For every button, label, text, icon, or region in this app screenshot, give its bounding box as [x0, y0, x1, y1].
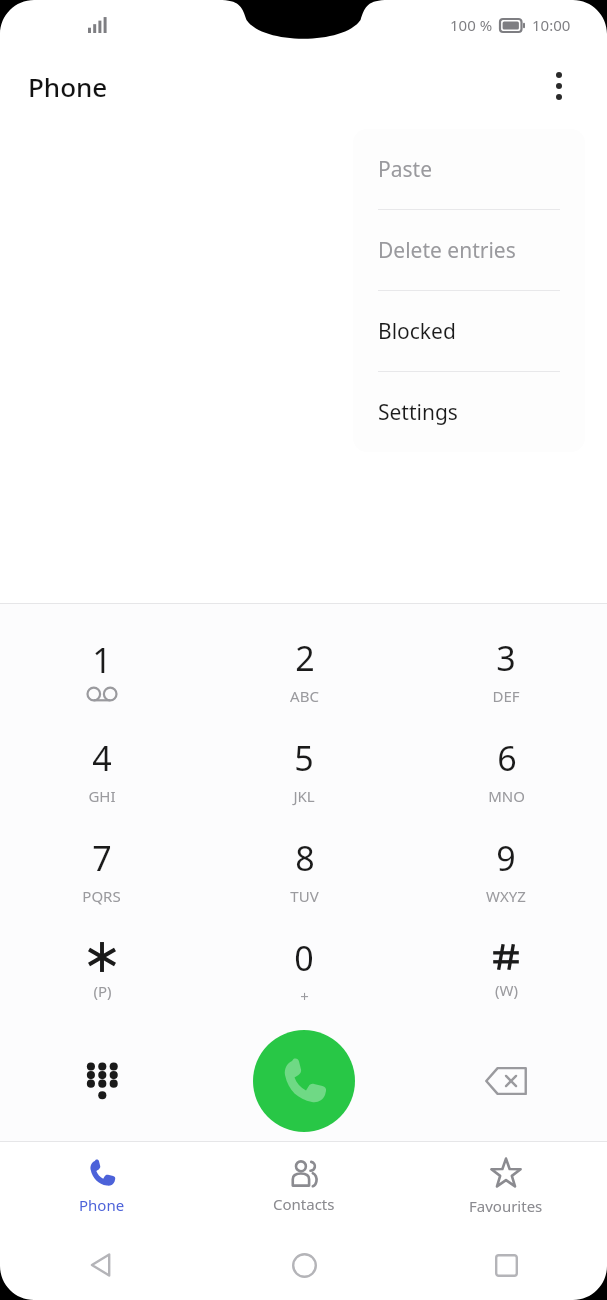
button[interactable]: 5	[203, 720, 405, 820]
staticText: 3	[496, 635, 516, 681]
button[interactable]: Home	[203, 1230, 405, 1300]
button[interactable]: More options	[537, 64, 581, 108]
button[interactable]: Favourites	[405, 1142, 607, 1230]
staticText: PQRS	[82, 886, 121, 906]
staticText: 5	[294, 735, 314, 781]
staticText: ABC	[290, 686, 319, 706]
staticText: (W)	[495, 980, 518, 1000]
button[interactable]: Hide keypad	[0, 1020, 203, 1141]
button[interactable]: 1	[0, 620, 203, 720]
staticText: Paste	[378, 155, 432, 184]
staticText: Phone	[28, 69, 108, 104]
button[interactable]: 9	[405, 820, 607, 920]
staticText: +	[300, 986, 309, 1006]
staticText: 9	[496, 835, 516, 881]
staticText: WXYZ	[486, 886, 526, 906]
button[interactable]: 3	[405, 620, 607, 720]
staticText: 100 %	[450, 15, 493, 35]
button[interactable]: Recent apps	[405, 1230, 607, 1300]
staticText: Blocked	[378, 317, 456, 346]
staticText: Favourites	[469, 1196, 543, 1216]
button[interactable]: (P)	[0, 920, 203, 1020]
button[interactable]: 8	[203, 820, 405, 920]
staticText: Phone	[79, 1195, 125, 1215]
staticText: 10:00	[532, 15, 571, 35]
staticText: 4	[92, 735, 112, 781]
button[interactable]: Delete entries	[353, 210, 585, 290]
staticText: MNO	[488, 786, 525, 806]
staticText: 1	[92, 637, 112, 683]
staticText: 6	[497, 735, 517, 781]
staticText: TUV	[290, 886, 319, 906]
staticText: (P)	[93, 981, 112, 1001]
button[interactable]: 6	[405, 720, 607, 820]
staticText: 8	[295, 835, 315, 881]
staticText: Delete entries	[378, 236, 516, 265]
button[interactable]: Blocked	[353, 291, 585, 371]
staticText: 7	[92, 835, 112, 881]
button[interactable]: Back	[0, 1230, 203, 1300]
button[interactable]: 4	[0, 720, 203, 820]
staticText: 2	[295, 635, 315, 681]
staticText: Contacts	[273, 1194, 335, 1214]
button[interactable]: 2	[203, 620, 405, 720]
button[interactable]: Contacts	[203, 1142, 405, 1230]
button[interactable]: Backspace	[405, 1020, 607, 1141]
staticText: 0	[294, 935, 314, 981]
button[interactable]: Call	[253, 1030, 355, 1132]
staticText: JKL	[293, 786, 315, 806]
staticText: GHI	[88, 786, 116, 806]
button[interactable]: Phone	[0, 1142, 203, 1230]
staticText: Settings	[378, 398, 458, 427]
staticText: DEF	[492, 686, 520, 706]
button[interactable]: Paste	[353, 129, 585, 209]
button[interactable]: (W)	[405, 920, 607, 1020]
button[interactable]: 0	[203, 920, 405, 1020]
button[interactable]: 7	[0, 820, 203, 920]
button[interactable]: Settings	[353, 372, 585, 452]
